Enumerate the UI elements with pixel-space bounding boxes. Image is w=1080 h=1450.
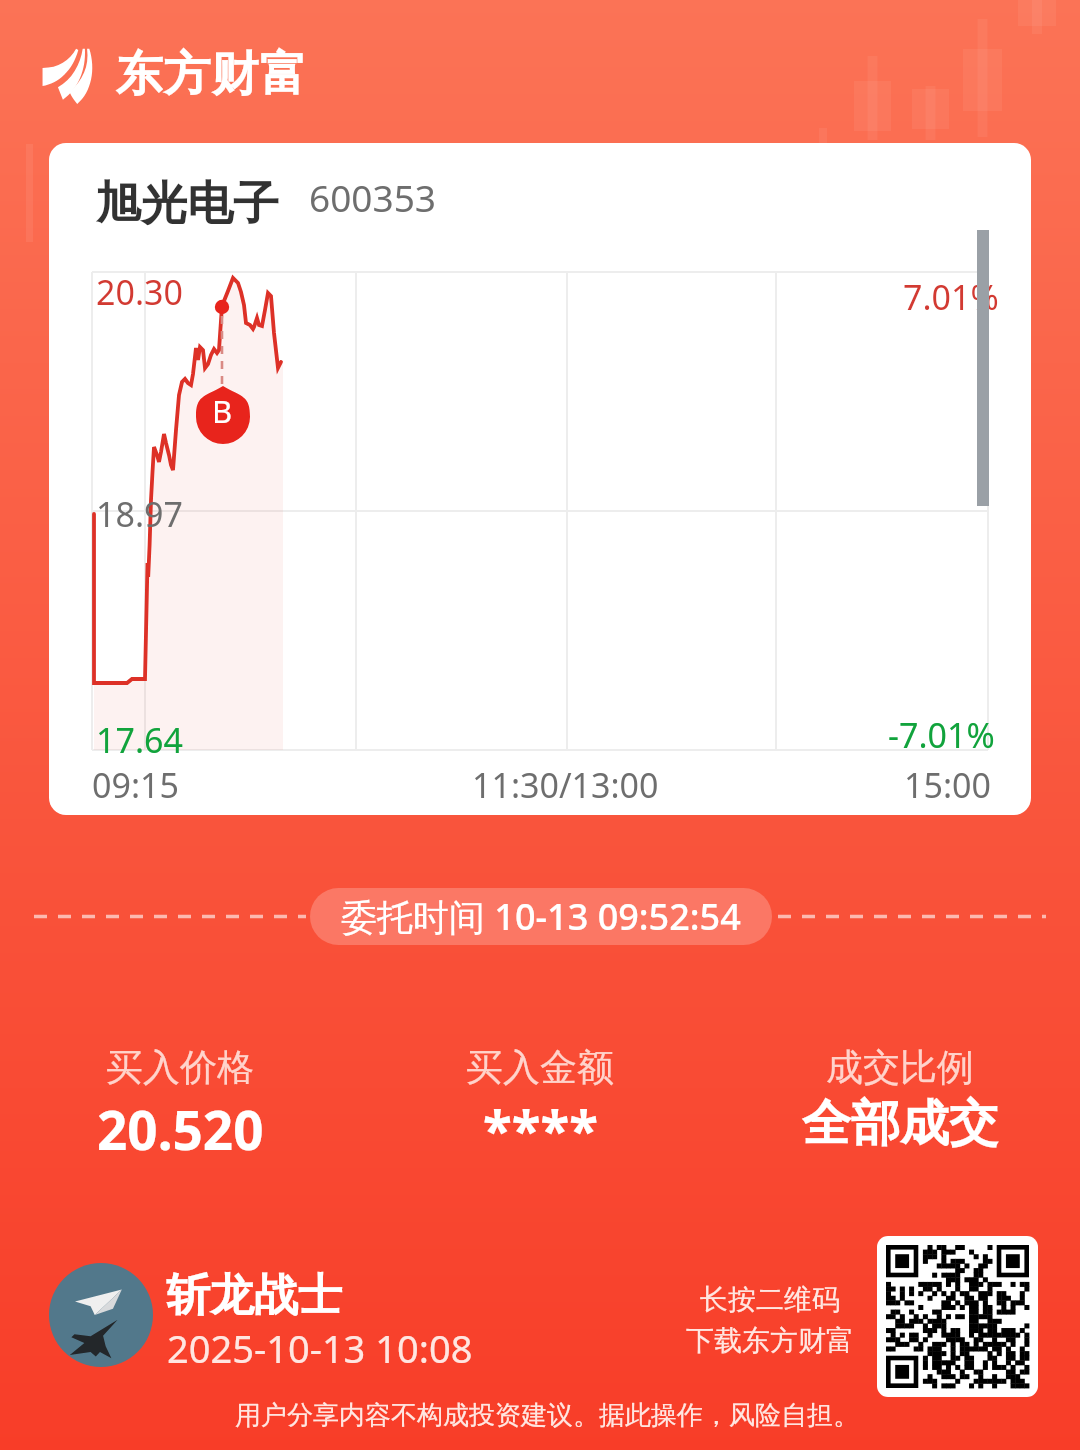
- staticText: 成交比例: [826, 1044, 974, 1091]
- staticText: 18.97: [96, 491, 183, 537]
- staticText: 买入价格: [106, 1044, 254, 1091]
- button[interactable]: 成交比例: [720, 1044, 1080, 1155]
- staticText: B: [212, 390, 233, 432]
- staticText: 7.01%: [903, 274, 999, 320]
- staticText: 旭光电子: [95, 175, 279, 233]
- button[interactable]: 委托时间 10-13 09:52:54: [310, 888, 772, 945]
- staticText: 600353: [309, 172, 436, 222]
- staticText: 东方财富: [115, 45, 307, 104]
- button[interactable]: East Money logo: [42, 44, 307, 104]
- staticText: 17.64: [96, 717, 183, 763]
- staticText: 09:15: [92, 762, 179, 808]
- staticText: 20.520: [97, 1093, 264, 1165]
- staticText: 用户分享内容不构成投资建议。据此操作，风险自担。: [7, 1399, 1080, 1432]
- button[interactable]: 买入价格: [0, 1044, 360, 1165]
- other: East Money logo: [42, 44, 97, 104]
- staticText: ****: [483, 1093, 598, 1165]
- staticText: 长按二维码: [700, 1282, 840, 1317]
- button[interactable]: 买入金额: [360, 1044, 720, 1165]
- staticText: 买入金额: [466, 1044, 614, 1091]
- staticText: 2025-10-13 10:08: [167, 1322, 473, 1374]
- staticText: 下载东方财富: [686, 1323, 854, 1358]
- button[interactable]: QR code: [877, 1236, 1038, 1397]
- button[interactable]: 旭光电子: [49, 143, 1031, 815]
- staticText: -7.01%: [888, 712, 995, 758]
- button[interactable]: User avatar: [49, 1263, 153, 1367]
- staticText: 委托时间 10-13 09:52:54: [341, 892, 741, 941]
- staticText: 斩龙战士: [166, 1268, 342, 1323]
- staticText: 20.30: [96, 269, 183, 315]
- staticText: 全部成交: [802, 1093, 998, 1155]
- staticText: 11:30/13:00: [472, 762, 659, 808]
- staticText: 15:00: [904, 762, 991, 808]
- button[interactable]: Buy marker: [196, 386, 250, 444]
